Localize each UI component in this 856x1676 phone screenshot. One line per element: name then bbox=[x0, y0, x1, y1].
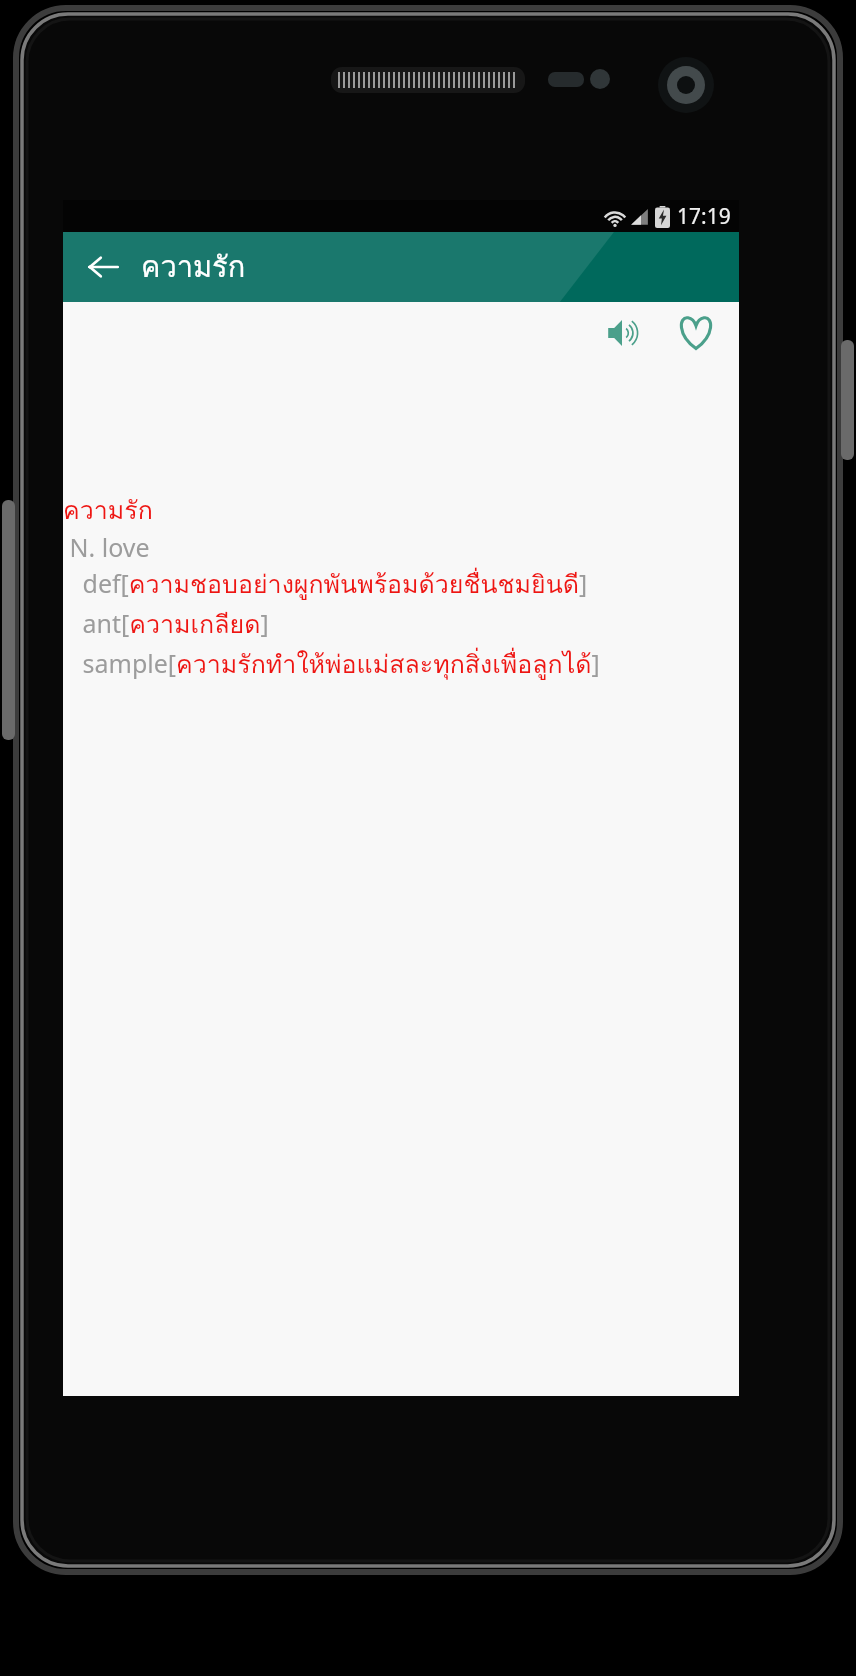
button[interactable]: Play pronunciation bbox=[595, 306, 649, 360]
staticText: sample[ความรักทำให้พ่อแม่สละทุกสิ่งเพื่อ… bbox=[63, 644, 600, 684]
button[interactable]: Add to favourites bbox=[669, 306, 723, 360]
staticText: ant[ความเกลียด] bbox=[63, 604, 269, 644]
staticText: 17:19 bbox=[677, 202, 731, 231]
button[interactable]: Navigate up bbox=[75, 239, 131, 295]
staticText: N. love bbox=[63, 530, 150, 564]
staticText: ความรัก bbox=[141, 244, 246, 290]
staticText: def[ความชอบอย่างผูกพันพร้อมด้วยชื่นชมยิน… bbox=[63, 564, 588, 604]
button[interactable]: ความรัก bbox=[63, 490, 600, 684]
staticText: ความรัก bbox=[63, 490, 153, 530]
